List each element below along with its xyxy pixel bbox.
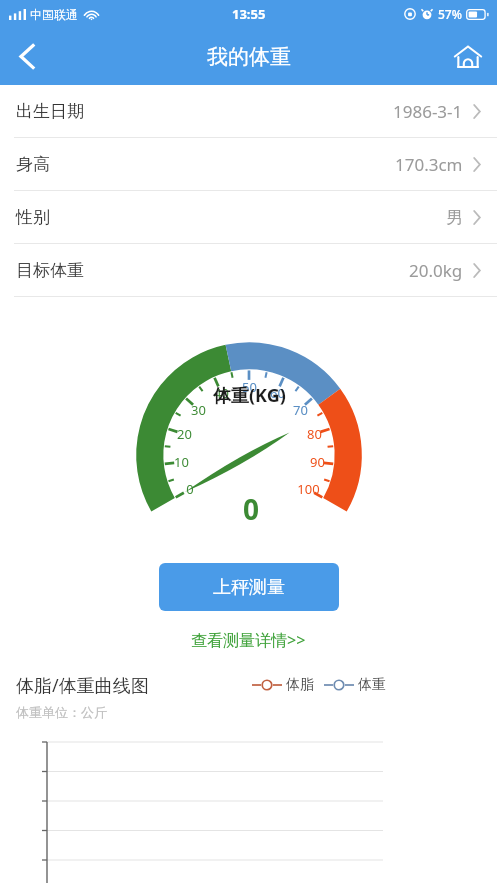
staticText: 80 — [307, 425, 322, 443]
button[interactable]: 查看测量详情>> — [181, 627, 316, 653]
staticText: 查看测量详情>> — [191, 629, 306, 651]
button[interactable]: 体重 — [324, 676, 386, 694]
staticText: 身高 — [16, 154, 50, 175]
staticText: 0 — [243, 490, 260, 528]
staticText: 170.3cm — [395, 153, 463, 176]
button[interactable]: 出生日期 — [0, 85, 497, 137]
staticText: 体脂 — [286, 676, 314, 694]
staticText: 体重单位：公斤 — [16, 704, 107, 720]
staticText: 90 — [310, 453, 325, 471]
staticText: 40 — [214, 384, 229, 402]
staticText: 60 — [270, 384, 285, 402]
button[interactable]: 目标体重 — [0, 244, 497, 296]
staticText: 10 — [174, 453, 189, 471]
staticText: 体重 — [358, 676, 386, 694]
staticText: 1986-3-1 — [393, 100, 463, 123]
staticText: 目标体重 — [16, 260, 84, 281]
button[interactable]: 体脂 — [252, 676, 314, 694]
button[interactable]: Back — [0, 28, 54, 85]
button[interactable]: 身高 — [0, 138, 497, 190]
button[interactable]: 上秤测量 — [159, 563, 339, 611]
staticText: 57% — [438, 6, 462, 22]
staticText: 体重(KG) — [213, 383, 286, 408]
staticText: 70 — [293, 401, 308, 419]
staticText: 30 — [191, 401, 206, 419]
button[interactable]: 性别 — [0, 191, 497, 243]
staticText: 上秤测量 — [213, 576, 285, 599]
staticText: 我的体重 — [207, 44, 291, 70]
staticText: 20 — [177, 425, 192, 443]
staticText: 13:55 — [232, 5, 266, 23]
staticText: 100 — [297, 480, 320, 498]
staticText: 20.0kg — [409, 259, 463, 282]
staticText: 男 — [446, 207, 463, 228]
staticText: 性别 — [16, 207, 50, 228]
button[interactable]: Home — [439, 28, 497, 85]
staticText: 中国联通 — [30, 7, 78, 22]
staticText: 0 — [186, 480, 194, 498]
staticText: 体脂/体重曲线图 — [16, 673, 149, 698]
staticText: 出生日期 — [16, 101, 84, 122]
staticText: 50 — [242, 378, 257, 396]
